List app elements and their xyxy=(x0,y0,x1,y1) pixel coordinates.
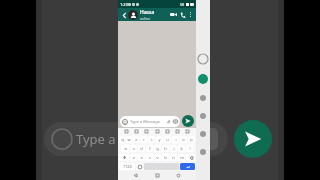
button[interactable]: b xyxy=(162,154,169,161)
button[interactable]: o xyxy=(180,136,187,143)
staticText: b xyxy=(164,155,167,160)
button[interactable]: Backspace xyxy=(186,154,195,161)
staticText: w xyxy=(127,137,131,142)
staticText: 58 xyxy=(180,2,185,7)
staticText: ?123 xyxy=(123,164,132,169)
staticText: i xyxy=(175,137,177,142)
staticText: e xyxy=(135,137,138,142)
staticText: f xyxy=(149,146,151,151)
staticText: g xyxy=(156,146,159,151)
staticText: Hassa xyxy=(140,9,155,16)
staticText: h xyxy=(164,146,167,151)
button[interactable]: Back xyxy=(132,172,139,179)
staticText: Type a M xyxy=(76,130,131,148)
staticText: j xyxy=(173,146,175,151)
button[interactable]: Voice call xyxy=(178,10,187,19)
button[interactable]: Keyboard tool 3 xyxy=(155,129,160,134)
button[interactable]: a xyxy=(121,145,129,152)
button[interactable]: Contact photo xyxy=(128,10,138,20)
staticText: 1:20 xyxy=(120,2,128,7)
staticText: y xyxy=(158,137,161,142)
staticText: d xyxy=(140,146,143,151)
button[interactable]: Keyboard tool 1 xyxy=(134,129,139,134)
staticText: q xyxy=(121,137,124,142)
button[interactable]: Keyboard tool 4 xyxy=(165,129,170,134)
button[interactable]: z xyxy=(130,154,137,161)
button[interactable]: k xyxy=(178,145,185,152)
staticText: m xyxy=(180,155,184,160)
staticText: r xyxy=(143,137,145,142)
button[interactable]: w xyxy=(126,136,132,143)
button[interactable]: p xyxy=(188,136,195,143)
button[interactable]: More options xyxy=(187,11,194,18)
button[interactable]: y xyxy=(156,136,163,143)
button[interactable]: j xyxy=(170,145,177,152)
button[interactable]: s xyxy=(130,145,137,152)
button[interactable]: c xyxy=(146,154,153,161)
staticText: u xyxy=(166,137,169,142)
staticText: x xyxy=(140,155,143,160)
staticText: t xyxy=(151,137,153,142)
staticText: c xyxy=(149,155,151,160)
button[interactable]: Recents xyxy=(175,172,182,179)
button[interactable]: Keyboard tool 5 xyxy=(175,129,180,134)
button[interactable]: Back xyxy=(120,11,128,19)
button[interactable]: x xyxy=(138,154,145,161)
button[interactable]: i xyxy=(172,136,179,143)
button[interactable]: Home xyxy=(154,172,161,179)
button[interactable]: Video call xyxy=(169,10,178,19)
staticText: online xyxy=(140,16,151,21)
button[interactable]: e xyxy=(133,136,139,143)
button[interactable]: n xyxy=(170,154,177,161)
button[interactable]: g xyxy=(154,145,161,152)
button[interactable]: q xyxy=(119,136,125,143)
button[interactable]: t xyxy=(148,136,155,143)
button[interactable]: Enter xyxy=(180,163,195,170)
staticText: k xyxy=(180,146,183,151)
button[interactable]: f xyxy=(146,145,153,152)
button[interactable]: d xyxy=(138,145,145,152)
button[interactable]: u xyxy=(164,136,171,143)
button[interactable]: l xyxy=(186,145,193,152)
button[interactable]: Type a Message xyxy=(120,116,180,127)
button[interactable]: Hassa xyxy=(140,9,169,21)
staticText: z xyxy=(133,155,135,160)
button[interactable]: Keyboard tool 2 xyxy=(144,129,149,134)
staticText: p xyxy=(190,137,193,142)
button[interactable]: ?123 xyxy=(119,163,135,170)
button[interactable]: Emoji xyxy=(136,163,143,170)
staticText: n xyxy=(172,155,175,160)
button[interactable]: m xyxy=(178,154,185,161)
staticText: v xyxy=(156,155,159,160)
button[interactable]: Shift xyxy=(119,154,129,161)
staticText: o xyxy=(182,137,185,142)
staticText: l xyxy=(189,146,191,151)
button[interactable]: v xyxy=(154,154,161,161)
button[interactable]: Keyboard tool 0 xyxy=(124,129,129,134)
staticText: a xyxy=(124,146,127,151)
button[interactable]: h xyxy=(162,145,169,152)
button[interactable]: r xyxy=(140,136,147,143)
staticText: Type a Message xyxy=(130,119,166,124)
staticText: s xyxy=(133,146,135,151)
button[interactable]: Keyboard tool 6 xyxy=(185,129,190,134)
button[interactable]: Send xyxy=(182,115,194,127)
